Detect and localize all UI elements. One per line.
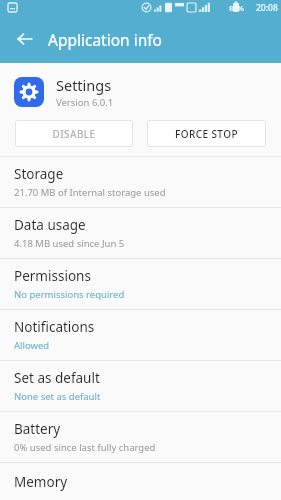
staticText: DISABLE xyxy=(52,127,96,141)
staticText: Version 6.0.1 xyxy=(56,96,114,109)
staticText: 21.70 MB of Internal storage used xyxy=(14,186,166,199)
staticText: Battery xyxy=(14,420,61,438)
button[interactable]: Data usage xyxy=(0,207,281,258)
button[interactable]: Back xyxy=(8,22,42,56)
staticText: Notifications xyxy=(14,318,95,336)
staticText: 84% xyxy=(229,3,244,13)
staticText: Settings xyxy=(56,75,112,95)
button[interactable]: FORCE STOP xyxy=(147,120,266,147)
staticText: 0% used since last fully charged xyxy=(14,441,156,454)
button[interactable]: Notifications xyxy=(0,309,281,360)
button[interactable]: Storage xyxy=(0,156,281,207)
staticText: Permissions xyxy=(14,267,91,285)
staticText: 4.18 MB used since Jun 5 xyxy=(14,237,125,250)
staticText: Set as default xyxy=(14,369,100,387)
staticText: Data usage xyxy=(14,216,86,234)
staticText: Application info xyxy=(48,29,162,50)
button[interactable]: Memory xyxy=(0,462,281,500)
staticText: Allowed xyxy=(14,339,50,352)
button[interactable]: Permissions xyxy=(0,258,281,309)
staticText: 20:08 xyxy=(256,2,278,14)
button[interactable]: DISABLE xyxy=(15,120,133,147)
staticText: None set as default xyxy=(14,390,101,403)
staticText: No permissions required xyxy=(14,288,125,301)
staticText: Memory xyxy=(14,473,68,491)
staticText: FORCE STOP xyxy=(175,127,238,141)
staticText: Storage xyxy=(14,165,64,183)
button[interactable]: Set as default xyxy=(0,360,281,411)
button[interactable]: Battery xyxy=(0,411,281,462)
